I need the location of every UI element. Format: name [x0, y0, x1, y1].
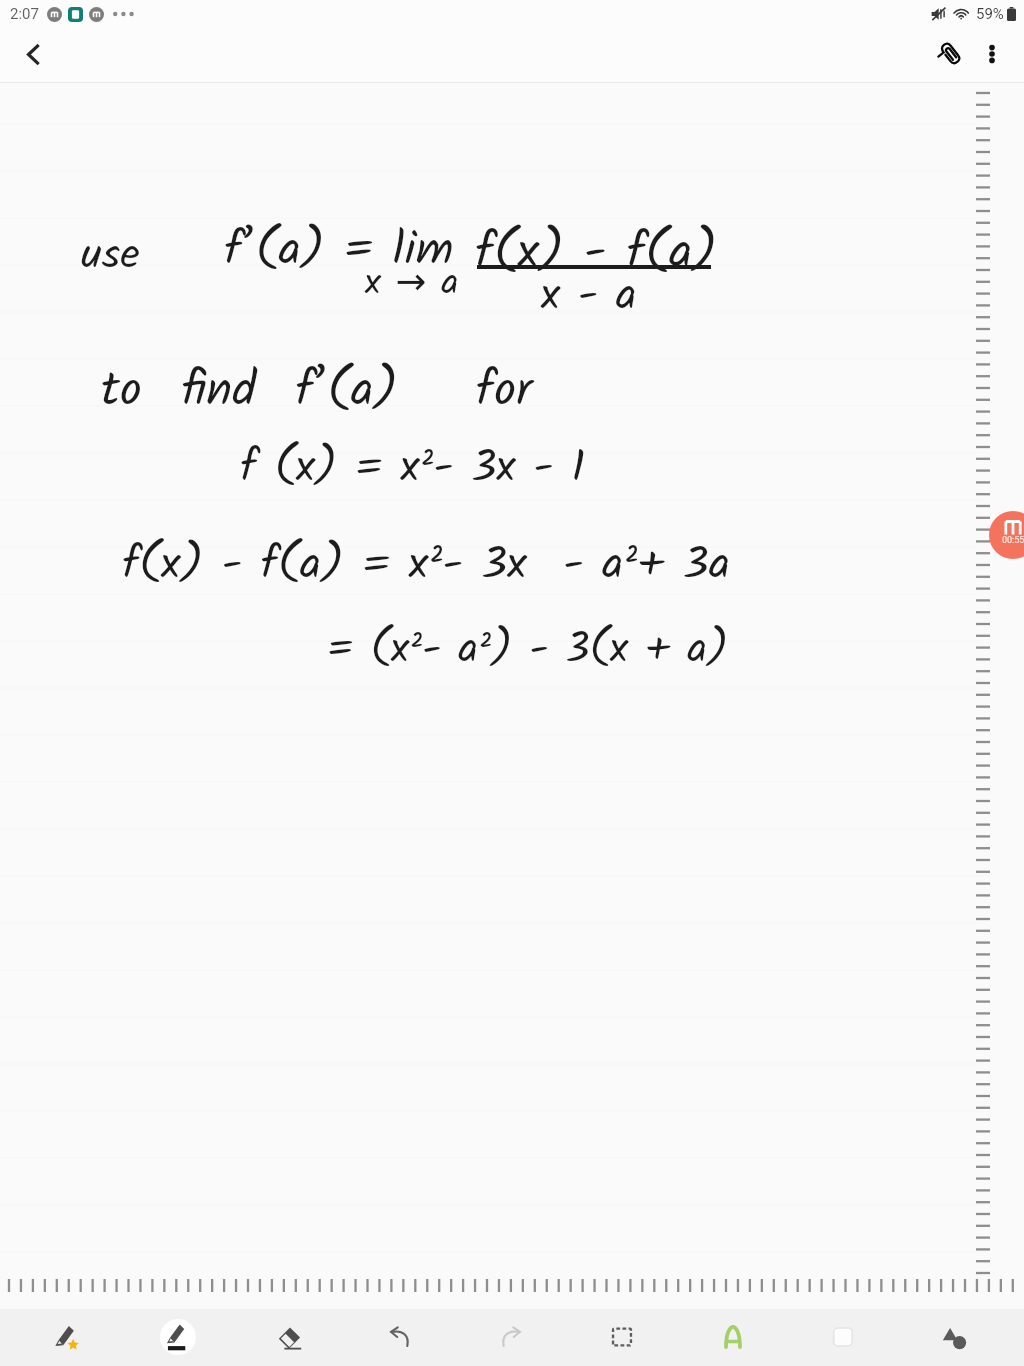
staticText: x → a	[365, 255, 459, 314]
button[interactable]: Shapes	[926, 1309, 982, 1365]
staticText: f(x) - f(a) = x²- 3x - a²+ 3a	[122, 530, 730, 602]
staticText: 2:07	[10, 5, 39, 23]
button[interactable]: Text recognition	[705, 1309, 761, 1365]
button[interactable]: Page style	[815, 1309, 871, 1365]
button[interactable]: Pen settings	[39, 1309, 95, 1365]
button[interactable]: Undo	[372, 1309, 428, 1365]
staticText: to find f’(a) for	[101, 353, 533, 430]
staticText: 00:55	[1002, 535, 1024, 546]
button[interactable]: Back	[9, 30, 57, 78]
staticText: = (x²- a²) - 3(x + a)	[327, 617, 729, 684]
button[interactable]: Pen	[150, 1309, 206, 1365]
button[interactable]: Selection	[594, 1309, 650, 1365]
button[interactable]: Eraser	[262, 1309, 318, 1365]
staticText: f(x) - f(a)	[475, 214, 718, 293]
button[interactable]: Recording timer	[989, 511, 1024, 559]
button[interactable]: More options	[970, 32, 1014, 76]
staticText: f’(a) = lim	[224, 214, 454, 290]
staticText: use	[81, 222, 140, 291]
staticText: f (x) = x²- 3x - 1	[240, 434, 586, 505]
staticText: 59%	[976, 5, 1004, 23]
button[interactable]: Redo	[483, 1309, 539, 1365]
button[interactable]: Attach	[928, 31, 974, 77]
staticText: x - a	[541, 262, 637, 333]
